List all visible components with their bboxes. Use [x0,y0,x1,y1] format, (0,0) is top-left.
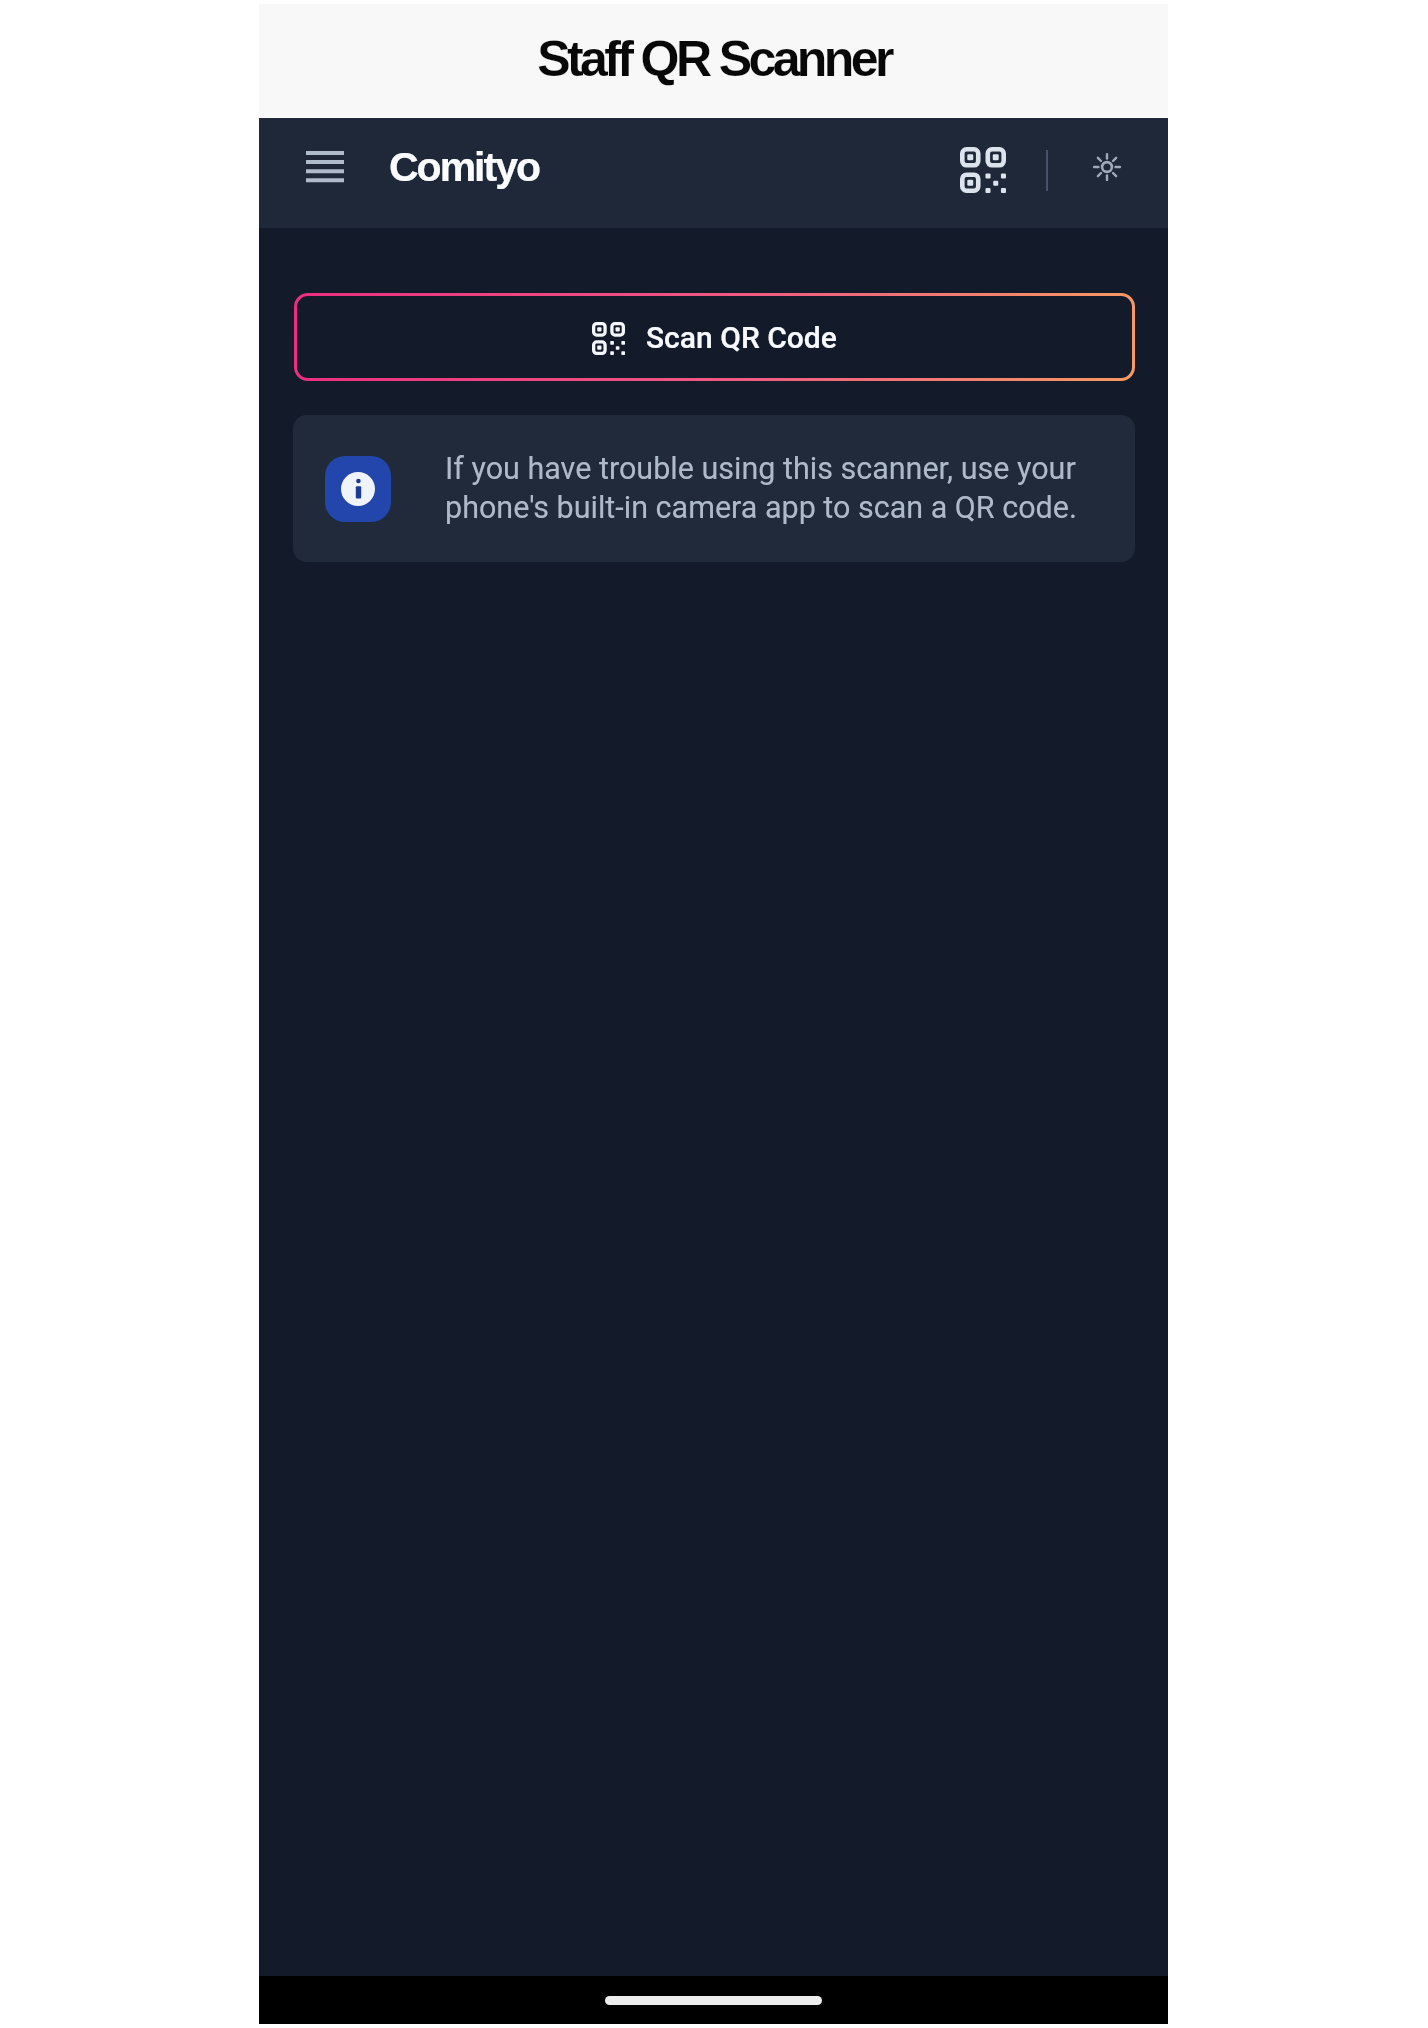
staticText: Staff QR Scanner [537,31,891,87]
staticText: Comityo [390,144,540,190]
button[interactable]: Toggle light and dark theme [1074,134,1140,200]
staticText: If you have trouble using this scanner, … [445,451,1135,525]
button[interactable]: Scan QR code [951,138,1015,202]
button[interactable]: Scan QR Code [294,293,1135,381]
staticText: Scan QR Code [646,320,837,355]
button[interactable]: Open navigation menu [277,135,373,199]
